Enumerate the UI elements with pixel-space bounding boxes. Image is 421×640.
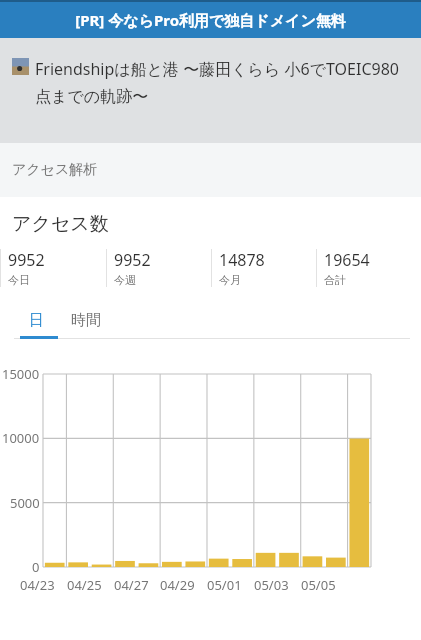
staticText: 14878 (219, 249, 265, 271)
staticText: アクセス解析 (12, 161, 98, 179)
button[interactable]: 日 (14, 304, 58, 336)
staticText: 04/27 (114, 576, 149, 594)
button[interactable]: [PR] 今ならPro利用で独自ドメイン無料 (0, 2, 421, 38)
button[interactable]: 9952 (0, 249, 106, 287)
staticText: 5000 (10, 494, 40, 512)
staticText: 今日 (8, 273, 30, 287)
staticText: 15000 (2, 365, 40, 383)
staticText: 05/01 (207, 576, 242, 594)
staticText: [PR] 今ならPro利用で独自ドメイン無料 (75, 10, 346, 30)
staticText: 今月 (219, 273, 241, 287)
staticText: Friendshipは船と港 〜藤田くらら 小6でTOEIC980点までの軌跡〜 (35, 58, 413, 107)
button[interactable]: Blog thumbnail (0, 38, 421, 143)
staticText: アクセス数 (12, 212, 109, 236)
staticText: 10000 (2, 429, 40, 447)
staticText: 日 (29, 311, 44, 330)
staticText: 04/29 (160, 576, 195, 594)
staticText: 05/05 (301, 576, 336, 594)
other: Blog thumbnail (12, 58, 29, 75)
staticText: 9952 (8, 249, 45, 271)
staticText: 今週 (114, 273, 136, 287)
staticText: 合計 (324, 273, 346, 287)
button[interactable]: 14878 (211, 249, 316, 287)
button[interactable]: 19654 (316, 249, 421, 287)
staticText: 時間 (71, 311, 101, 330)
staticText: 05/03 (254, 576, 289, 594)
staticText: 0 (32, 558, 40, 576)
staticText: 19654 (324, 249, 370, 271)
staticText: 9952 (114, 249, 151, 271)
staticText: 04/25 (67, 576, 102, 594)
button[interactable]: 時間 (58, 304, 114, 336)
button[interactable]: 9952 (106, 249, 211, 287)
staticText: 04/23 (20, 576, 55, 594)
